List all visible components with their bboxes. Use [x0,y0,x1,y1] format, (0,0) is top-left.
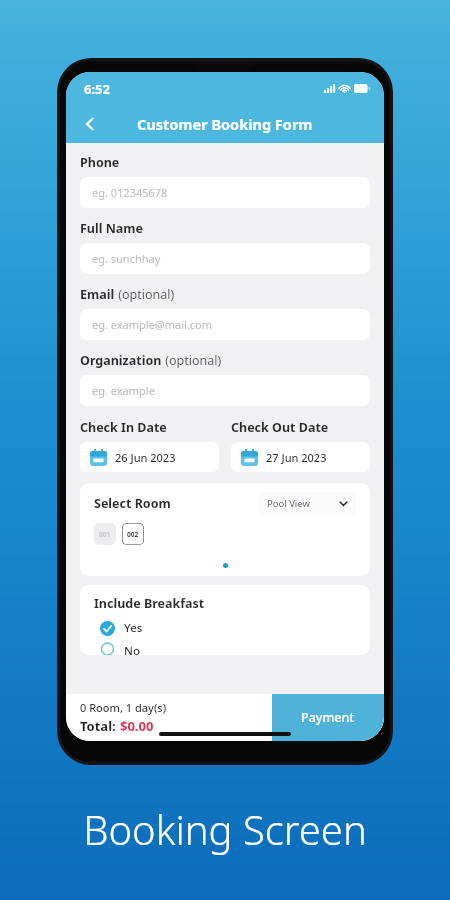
staticText: 27 Jun 2023 [266,450,327,465]
staticText: Organization [80,352,162,369]
staticText: eg. example [92,383,155,398]
button[interactable]: eg. example [80,375,370,406]
staticText: 002 [127,530,139,539]
staticText: Total: [80,717,120,735]
staticText: Phone [80,154,120,171]
button[interactable]: 002 [122,523,144,545]
staticText: Payment [301,709,355,726]
button[interactable]: Back [74,108,106,140]
staticText: eg. 012345678 [92,185,168,200]
staticText: eg. sunchhay [92,251,161,266]
staticText: Select Room [94,495,171,512]
staticText: (optional) [162,352,222,369]
staticText: eg. example@mail.com [92,317,213,332]
button[interactable]: Pool View [259,492,356,515]
button[interactable]: 27 Jun 2023 [231,442,370,472]
button[interactable]: eg. sunchhay [80,243,370,274]
staticText: Full Name [80,220,143,237]
staticText: Pool View [267,497,310,510]
staticText: 6:52 [84,80,110,98]
button[interactable]: eg. example@mail.com [80,309,370,340]
staticText: 0 Room, 1 day(s) [80,700,167,715]
staticText: (optional) [115,286,175,303]
button[interactable]: eg. 012345678 [80,177,370,208]
button[interactable]: No [100,643,140,655]
staticText: Booking Screen [0,802,450,856]
staticText: 26 Jun 2023 [115,450,176,465]
staticText: Yes [124,620,143,636]
button[interactable]: Yes [100,620,143,636]
button[interactable]: Payment [272,694,384,741]
button[interactable]: 001 [94,523,116,545]
staticText: 001 [99,530,111,539]
staticText: Check In Date [80,419,167,436]
staticText: Email [80,286,115,303]
staticText: No [124,643,140,655]
staticText: $0.00 [120,717,154,735]
staticText: Customer Booking Form [137,114,313,134]
staticText: Check Out Date [231,419,329,436]
button[interactable]: 26 Jun 2023 [80,442,219,472]
staticText: Include Breakfast [94,595,205,612]
